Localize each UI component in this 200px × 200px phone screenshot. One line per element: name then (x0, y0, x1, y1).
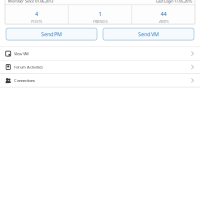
button[interactable]: Send VM (103, 28, 194, 40)
staticText: POSTS (31, 19, 42, 24)
staticText: Send VM (138, 31, 159, 38)
staticText: VISITS (158, 19, 168, 24)
button[interactable]: Send PM (6, 28, 97, 40)
button[interactable]: Connections (0, 74, 200, 87)
staticText: Send PM (41, 31, 62, 38)
staticText: 44 (160, 10, 166, 18)
button[interactable]: View VM (0, 47, 200, 60)
staticText: Connections (14, 78, 35, 83)
staticText: Last Login 17.05.2015 (156, 0, 192, 4)
staticText: 4 (35, 10, 38, 18)
staticText: FRIENDS (92, 19, 107, 24)
staticText: Forum Activities (14, 64, 43, 70)
staticText: Member Since 01.06.2013 (8, 0, 53, 4)
staticText: View VM (14, 51, 29, 56)
button[interactable]: Forum Activities (0, 61, 200, 73)
staticText: 1 (98, 10, 101, 18)
